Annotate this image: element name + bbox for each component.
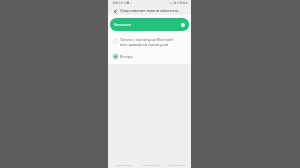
button[interactable]: Только с гарнитурой Bluetooth: [108, 34, 191, 49]
button[interactable]: Назад: [166, 158, 189, 168]
button[interactable]: Всегда: [108, 49, 191, 62]
button[interactable]: Назад: [111, 7, 119, 15]
staticText: Только с гарнитурой Bluetooth: [120, 37, 174, 42]
button[interactable]: Недавние: [113, 158, 136, 168]
staticText: Всегда: [120, 54, 133, 59]
staticText: или проводной гарнитурой: [120, 42, 169, 47]
staticText: Озвучивание имени абонента: [120, 8, 179, 13]
staticText: Включено: [114, 22, 132, 27]
button[interactable]: Главный экран: [139, 158, 162, 168]
button[interactable]: Включено: [110, 18, 189, 31]
